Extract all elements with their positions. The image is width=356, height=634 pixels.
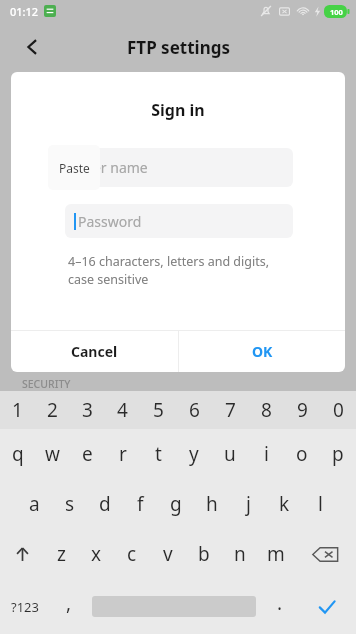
staticText: , — [66, 590, 72, 616]
staticText: 01:12 — [10, 4, 39, 19]
button[interactable]: 7 — [212, 391, 248, 429]
staticText: z — [57, 541, 66, 567]
staticText: v — [163, 541, 173, 567]
button[interactable]: c — [114, 529, 150, 579]
button[interactable]: Backspace — [294, 529, 356, 579]
button[interactable]: j — [230, 479, 266, 529]
staticText: i — [264, 441, 269, 467]
button[interactable]: 2 — [35, 391, 70, 429]
staticText: p — [332, 441, 344, 467]
button[interactable]: 1 — [0, 391, 35, 429]
button[interactable]: Back — [8, 23, 56, 71]
button[interactable]: Password — [65, 204, 293, 238]
button[interactable]: l — [302, 479, 338, 529]
staticText: a — [29, 491, 40, 517]
staticText: y — [189, 441, 199, 467]
staticText: h — [206, 491, 218, 517]
button[interactable]: b — [186, 529, 222, 579]
button[interactable]: 0 — [320, 391, 356, 429]
staticText: j — [246, 491, 251, 517]
button[interactable]: 8 — [248, 391, 284, 429]
staticText: 2 — [47, 397, 58, 423]
staticText: q — [12, 441, 24, 467]
button[interactable]: d — [87, 479, 122, 529]
button[interactable]: h — [194, 479, 230, 529]
staticText: Password — [78, 212, 142, 231]
staticText: g — [170, 491, 182, 517]
staticText: b — [198, 541, 210, 567]
button[interactable]: v — [150, 529, 186, 579]
staticText: u — [224, 441, 236, 467]
button[interactable]: OK — [179, 331, 345, 372]
staticText: d — [99, 491, 111, 517]
staticText: 9 — [297, 397, 308, 423]
staticText: Sign in — [11, 99, 345, 121]
button[interactable]: 4 — [105, 391, 140, 429]
staticText: . — [277, 590, 283, 616]
staticText: Cancel — [71, 342, 118, 361]
staticText: e — [82, 441, 93, 467]
button[interactable]: w — [35, 429, 70, 479]
button[interactable]: Shift — [0, 529, 44, 579]
staticText: OK — [252, 342, 273, 361]
staticText: Paste — [59, 160, 90, 176]
button[interactable]: t — [140, 429, 176, 479]
staticText: 3 — [82, 397, 93, 423]
button[interactable]: , — [50, 579, 87, 634]
button[interactable]: f — [122, 479, 158, 529]
staticText: 1 — [12, 397, 23, 423]
button[interactable]: g — [158, 479, 194, 529]
button[interactable]: 3 — [70, 391, 105, 429]
staticText: m — [267, 541, 285, 567]
staticText: s — [65, 491, 75, 517]
button[interactable]: User name — [65, 148, 293, 187]
button[interactable]: Space — [87, 579, 261, 634]
button[interactable]: e — [70, 429, 105, 479]
button[interactable]: k — [266, 479, 302, 529]
button[interactable]: s — [52, 479, 87, 529]
button[interactable]: x — [79, 529, 114, 579]
staticText: SECURITY — [22, 377, 71, 391]
staticText: 8 — [261, 397, 272, 423]
button[interactable]: Paste — [48, 145, 100, 190]
button[interactable]: m — [258, 529, 294, 579]
staticText: 4–16 characters, letters and digits, cas… — [68, 253, 270, 288]
button[interactable]: . — [261, 579, 298, 634]
button[interactable]: 6 — [176, 391, 212, 429]
button[interactable]: 5 — [140, 391, 176, 429]
button[interactable]: y — [176, 429, 212, 479]
staticText: n — [234, 541, 246, 567]
staticText: User name — [76, 158, 148, 177]
button[interactable]: i — [248, 429, 284, 479]
button[interactable]: ?123 — [0, 579, 50, 634]
staticText: 6 — [189, 397, 200, 423]
button[interactable]: 9 — [284, 391, 320, 429]
button[interactable]: n — [222, 529, 258, 579]
staticText: t — [155, 441, 162, 467]
staticText: FTP settings — [127, 36, 230, 59]
button[interactable]: p — [320, 429, 356, 479]
button[interactable]: q — [0, 429, 35, 479]
staticText: w — [45, 441, 60, 467]
staticText: ?123 — [11, 598, 39, 616]
button[interactable]: u — [212, 429, 248, 479]
staticText: 0 — [333, 397, 344, 423]
staticText: l — [318, 491, 323, 517]
staticText: c — [127, 541, 137, 567]
button[interactable]: z — [44, 529, 79, 579]
button[interactable]: o — [284, 429, 320, 479]
button[interactable]: r — [105, 429, 140, 479]
staticText: o — [296, 441, 308, 467]
staticText: f — [137, 491, 144, 517]
button[interactable]: a — [17, 479, 52, 529]
staticText: k — [279, 491, 290, 517]
staticText: 4 — [117, 397, 128, 423]
staticText: r — [119, 441, 127, 467]
staticText: 7 — [225, 397, 236, 423]
staticText: 100 — [330, 7, 343, 17]
button[interactable]: Enter — [298, 579, 356, 634]
button[interactable]: Cancel — [11, 331, 178, 372]
staticText: 5 — [153, 397, 164, 423]
staticText: x — [91, 541, 102, 567]
